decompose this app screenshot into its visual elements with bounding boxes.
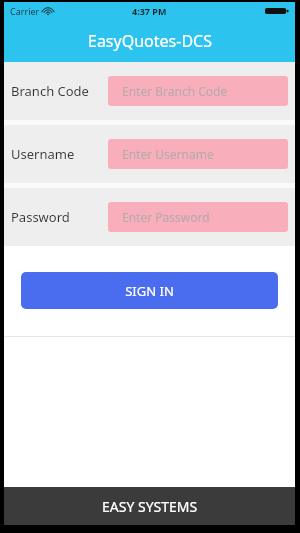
staticText: SIGN IN: [125, 282, 174, 300]
button[interactable]: SIGN IN: [21, 272, 278, 309]
button[interactable]: Enter Branch Code: [108, 76, 288, 106]
staticText: Enter Username: [122, 146, 214, 162]
staticText: Enter Branch Code: [122, 83, 228, 99]
button[interactable]: Password: [4, 188, 295, 246]
staticText: Password: [11, 208, 70, 226]
button[interactable]: Enter Password: [108, 202, 288, 232]
button[interactable]: Branch Code: [4, 62, 295, 120]
staticText: Enter Password: [122, 209, 210, 225]
staticText: Carrier: [10, 5, 40, 17]
staticText: EASY SYSTEMS: [102, 497, 198, 516]
staticText: EasyQuotes-DCS: [88, 30, 212, 52]
staticText: 4:37 PM: [132, 5, 167, 17]
button[interactable]: Username: [4, 125, 295, 183]
button[interactable]: Enter Username: [108, 139, 288, 169]
staticText: Branch Code: [11, 82, 89, 100]
button[interactable]: Easy Systems: [4, 487, 295, 525]
staticText: Username: [11, 145, 75, 163]
